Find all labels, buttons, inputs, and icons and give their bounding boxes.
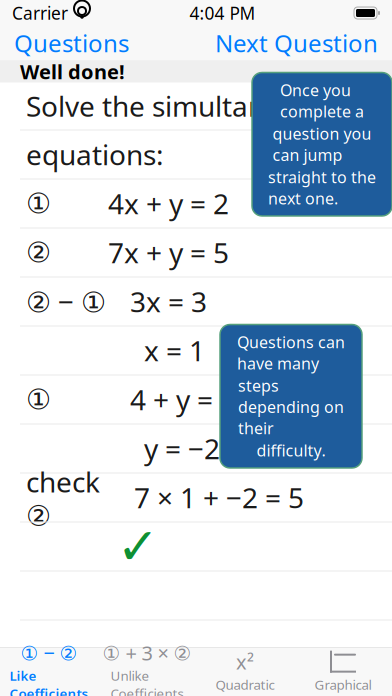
button[interactable]: x² bbox=[196, 648, 294, 696]
button[interactable]: Graphical bbox=[294, 648, 392, 696]
staticText: Carrier bbox=[12, 1, 68, 24]
staticText: Graphical bbox=[314, 676, 371, 693]
staticText: Like Coefficients bbox=[9, 667, 88, 696]
staticText: question you can jump bbox=[272, 123, 371, 165]
staticText: Once you complete a bbox=[280, 79, 364, 122]
staticText: 7 × 1 + −2 = 5 bbox=[134, 479, 304, 516]
staticText: x² bbox=[236, 648, 254, 675]
staticText: ② bbox=[26, 237, 51, 268]
staticText: ① + 3 × ② bbox=[102, 639, 191, 666]
staticText: straight to the next one. bbox=[268, 166, 376, 209]
staticText: Well done! bbox=[20, 58, 125, 85]
button[interactable]: ① + 3 × ② bbox=[98, 648, 196, 696]
staticText: check ② bbox=[26, 463, 100, 532]
staticText: equations: bbox=[26, 136, 164, 173]
staticText: 4:04 PM bbox=[189, 1, 255, 24]
staticText: y = −2 bbox=[144, 430, 220, 467]
staticText: Unlike Coefficients bbox=[110, 667, 183, 696]
staticText: Questions bbox=[14, 27, 129, 59]
staticText: ① bbox=[26, 188, 51, 219]
staticText: 4x + y = 2 bbox=[108, 185, 229, 222]
button[interactable]: Questions bbox=[0, 26, 143, 60]
staticText: 4 + y = 2 bbox=[130, 381, 236, 418]
staticText: difficulty. bbox=[256, 440, 325, 461]
staticText: Questions can have many bbox=[237, 331, 345, 374]
staticText: Quadratic bbox=[215, 676, 274, 693]
staticText: 7x + y = 5 bbox=[108, 234, 229, 271]
staticText: x = 1 bbox=[144, 332, 205, 369]
button[interactable]: Next Question bbox=[201, 26, 392, 60]
staticText: 3x = 3 bbox=[130, 283, 207, 320]
staticText: ✓ bbox=[117, 518, 159, 575]
button[interactable]: ① − ② bbox=[0, 648, 98, 696]
staticText: Solve the simultaneous bbox=[26, 87, 328, 125]
staticText: steps depending on their bbox=[238, 375, 344, 439]
staticText: ② − ① bbox=[26, 283, 106, 320]
staticText: Next Question bbox=[215, 27, 378, 59]
staticText: ① − ② bbox=[20, 639, 77, 666]
staticText: ① bbox=[26, 384, 51, 415]
